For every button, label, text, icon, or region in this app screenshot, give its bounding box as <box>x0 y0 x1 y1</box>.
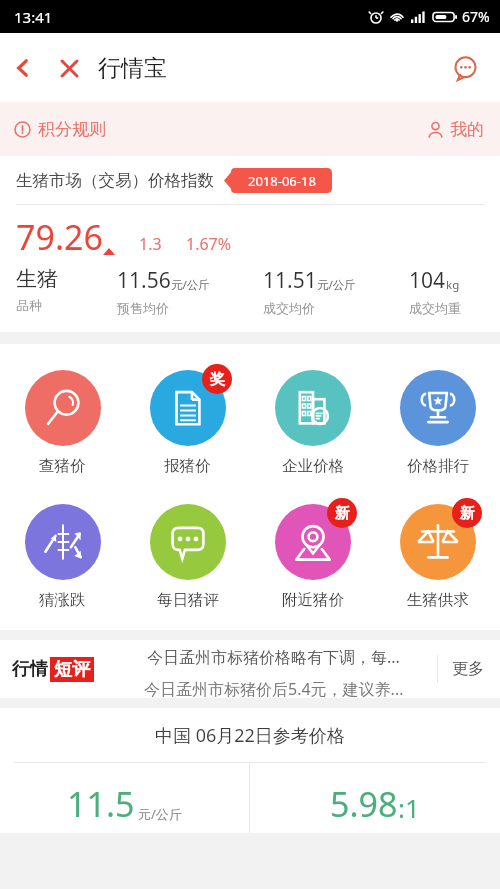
staticText: 积分规则 <box>38 119 106 140</box>
staticText: 短评 <box>54 658 90 681</box>
staticText: 成交均重 <box>409 300 461 316</box>
staticText: 11.56 <box>117 266 171 295</box>
staticText: 元/公斤 <box>317 277 356 293</box>
staticText: 67% <box>462 7 490 26</box>
staticText: 5.98 <box>330 781 398 827</box>
staticText: 更多 <box>452 659 484 679</box>
staticText: 生猪供求 <box>407 590 469 610</box>
staticText: 新 <box>460 504 475 523</box>
staticText: 1.67% <box>186 233 232 255</box>
staticText: 元/公斤 <box>171 277 210 293</box>
staticText: 查猪价 <box>39 456 86 476</box>
staticText: 猜涨跌 <box>39 590 86 610</box>
staticText: 1.3 <box>139 233 162 255</box>
button[interactable]: 积分规则 <box>14 119 106 140</box>
button[interactable]: 奖 <box>125 358 250 482</box>
button[interactable]: Back <box>0 45 46 91</box>
button[interactable]: Messages <box>444 47 486 89</box>
button[interactable]: 每日猪评 <box>125 492 250 616</box>
staticText: 每日猪评 <box>157 590 219 610</box>
button[interactable]: 更多 <box>438 659 488 679</box>
staticText: 11.51 <box>263 266 317 295</box>
staticText: 报猪价 <box>164 456 211 476</box>
staticText: 11.5 <box>67 781 135 827</box>
staticText: 104 <box>409 266 446 295</box>
staticText: 今日孟州市标猪价格略有下调，每... <box>147 646 400 668</box>
staticText: 生猪 <box>16 266 58 292</box>
staticText: 新 <box>335 504 350 523</box>
staticText: 奖 <box>210 370 225 389</box>
staticText: 企业价格 <box>282 456 344 476</box>
button[interactable]: 新 <box>375 492 500 616</box>
staticText: 13:41 <box>14 7 53 27</box>
staticText: 行情 <box>12 658 48 681</box>
button[interactable]: 价格排行 <box>375 358 500 482</box>
staticText: 79.26 <box>16 214 103 260</box>
staticText: 我的 <box>450 119 484 140</box>
staticText: :1 <box>398 790 420 825</box>
staticText: kg <box>446 277 460 293</box>
staticText: 行情宝 <box>98 54 167 83</box>
staticText: 品种 <box>16 297 42 313</box>
staticText: 预售均价 <box>117 300 169 316</box>
button[interactable]: 我的 <box>427 119 484 140</box>
button[interactable]: 查猪价 <box>0 358 125 482</box>
staticText: 2018-06-18 <box>248 172 316 190</box>
button[interactable]: 猜涨跌 <box>0 492 125 616</box>
staticText: 成交均价 <box>263 300 315 316</box>
staticText: 今日孟州市标猪价后5.4元，建议养... <box>144 678 404 700</box>
button[interactable]: Close <box>46 45 92 91</box>
button[interactable]: 新 <box>250 492 375 616</box>
staticText: 元/公斤 <box>138 805 182 823</box>
staticText: 价格排行 <box>407 456 469 476</box>
staticText: 附近猪价 <box>282 590 344 610</box>
staticText: 生猪市场（交易）价格指数 <box>16 170 214 191</box>
button[interactable]: 企业价格 <box>250 358 375 482</box>
staticText: 中国 06月22日参考价格 <box>155 723 345 748</box>
